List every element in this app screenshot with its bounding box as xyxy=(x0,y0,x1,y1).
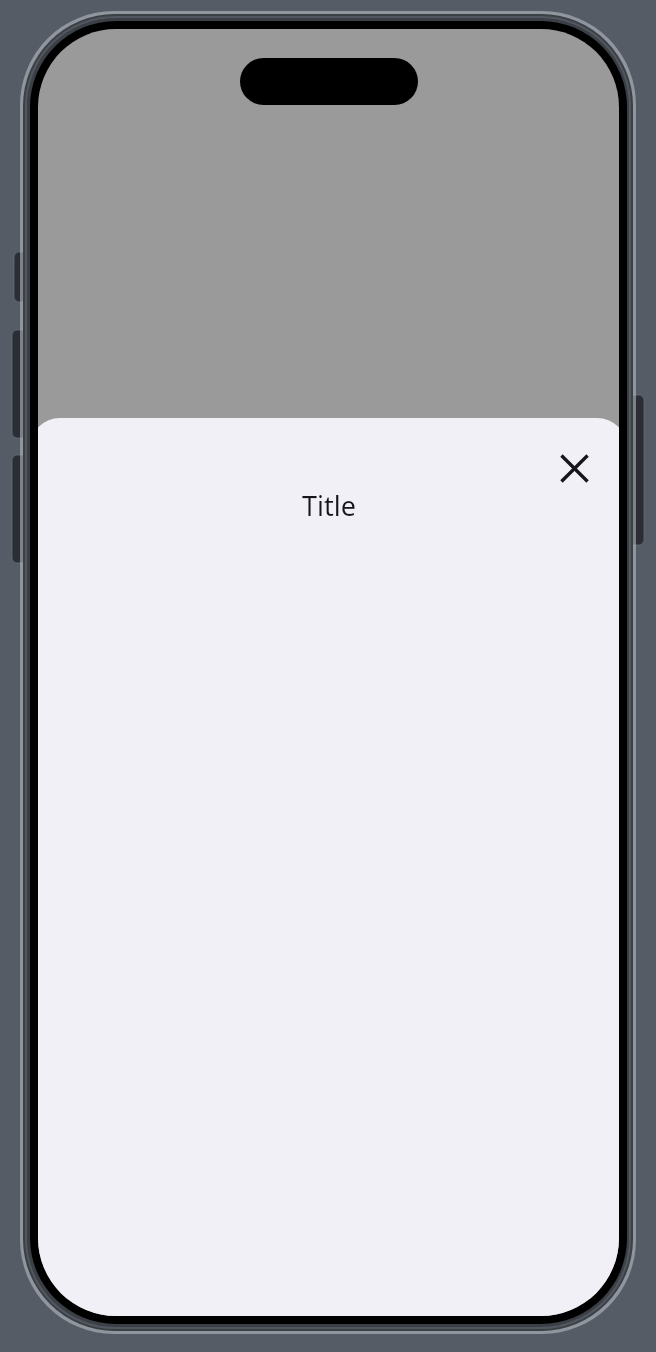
button[interactable]: Close xyxy=(546,440,602,496)
staticText: Title xyxy=(302,487,356,524)
